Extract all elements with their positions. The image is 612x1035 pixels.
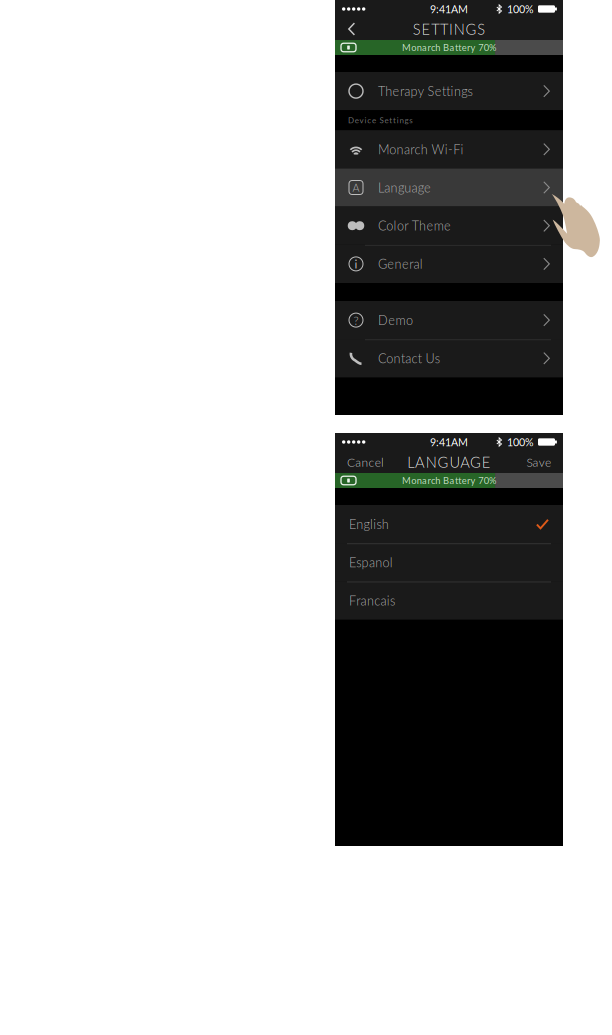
staticText: Monarch Wi-Fi — [378, 142, 464, 157]
button[interactable]: Back — [335, 18, 367, 40]
button[interactable]: Therapy Settings — [335, 72, 563, 110]
staticText: General — [378, 256, 423, 271]
staticText: 9:41AM — [430, 436, 468, 448]
staticText: i — [354, 257, 357, 271]
staticText: Language — [378, 180, 431, 195]
button[interactable]: Contact Us — [335, 339, 563, 377]
staticText: Demo — [378, 312, 413, 328]
staticText: Device Settings — [348, 115, 412, 125]
button[interactable]: A — [335, 168, 563, 207]
staticText: A — [352, 181, 359, 194]
button[interactable]: Save — [517, 451, 563, 473]
staticText: 100% — [507, 436, 534, 448]
button[interactable]: Cancel — [335, 451, 391, 473]
staticText: Therapy Settings — [378, 83, 472, 99]
button[interactable]: English — [335, 505, 563, 543]
staticText: ? — [353, 313, 358, 327]
staticText: Cancel — [347, 455, 384, 469]
staticText: Save — [526, 455, 551, 469]
button[interactable]: Monarch Wi-Fi — [335, 130, 563, 168]
staticText: Francais — [349, 593, 395, 608]
button[interactable]: Espanol — [335, 543, 563, 581]
button[interactable]: ? — [335, 301, 563, 339]
staticText: 100% — [507, 3, 534, 15]
staticText: Contact Us — [378, 351, 440, 366]
button[interactable]: Color Theme — [335, 207, 563, 245]
staticText: SETTINGS — [413, 20, 485, 38]
staticText: English — [349, 516, 389, 532]
staticText: Monarch Battery 70% — [402, 475, 496, 486]
button[interactable]: Francais — [335, 581, 563, 620]
staticText: 9:41AM — [430, 3, 468, 15]
staticText: Color Theme — [378, 218, 451, 233]
staticText: Monarch Battery 70% — [402, 42, 496, 53]
staticText: LANGUAGE — [407, 453, 491, 471]
staticText: Espanol — [349, 555, 393, 570]
button[interactable]: i — [335, 245, 563, 283]
